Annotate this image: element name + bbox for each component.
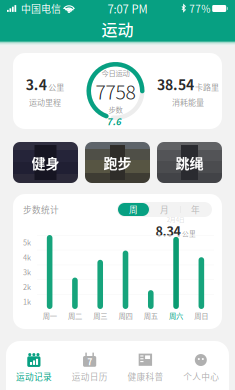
staticText: 跳绳 (175, 152, 203, 173)
button[interactable]: 跳绳 (157, 142, 222, 183)
staticText: 3k (23, 267, 31, 277)
staticText: 周日 (194, 310, 208, 321)
staticText: 8.34 (155, 222, 180, 240)
staticText: 运动记录 (16, 370, 52, 383)
button[interactable]: 7 (62, 345, 118, 389)
staticText: 周二 (68, 310, 82, 321)
staticText: 周四 (118, 310, 132, 321)
staticText: 运动里程 (29, 96, 61, 108)
staticText: 5k (23, 237, 31, 248)
button[interactable]: 周 (118, 203, 149, 216)
staticText: 周一 (43, 310, 57, 321)
staticText: 7.6 (106, 114, 121, 128)
staticText: 4k (23, 252, 31, 262)
staticText: 公里 (182, 229, 196, 238)
staticText: 运动日历 (72, 370, 108, 383)
staticText: 卡路里 (195, 81, 219, 93)
staticText: 2k (23, 281, 31, 292)
staticText: 个人中心 (183, 370, 219, 383)
staticText: 运动 (101, 17, 133, 41)
staticText: 月 (160, 203, 169, 216)
button[interactable]: 健身 (13, 142, 78, 183)
staticText: 周三 (93, 310, 107, 321)
staticText: 周六 (169, 310, 183, 321)
staticText: 38.54 (157, 74, 193, 94)
button[interactable]: 运动记录 (6, 345, 62, 389)
staticText: 周五 (144, 310, 158, 321)
button[interactable]: 健康科普 (117, 345, 173, 389)
staticText: 步数 (108, 104, 122, 115)
staticText: 77% (189, 1, 210, 16)
staticText: 1k (23, 296, 31, 307)
staticText: 2月4日 (167, 215, 185, 224)
button[interactable]: 个人中心 (173, 345, 229, 389)
button[interactable]: 年 (180, 203, 211, 216)
staticText: 公里 (48, 81, 64, 93)
staticText: 7758 (95, 77, 135, 105)
staticText: 3.4 (26, 74, 47, 94)
staticText: 今日运动 (101, 67, 129, 78)
staticText: 跑步 (103, 152, 131, 173)
staticText: 周 (129, 203, 138, 216)
button[interactable]: 月 (149, 203, 180, 216)
staticText: 7 (87, 355, 92, 368)
staticText: 7:07 PM (108, 0, 148, 17)
staticText: 消耗能量 (172, 96, 204, 108)
staticText: 健身 (31, 152, 59, 173)
staticText: 年 (191, 203, 200, 216)
staticText: 健康科普 (127, 370, 163, 383)
button[interactable]: 跑步 (85, 142, 150, 183)
staticText: 步数统计 (23, 203, 59, 216)
staticText: 中国电信 (21, 1, 61, 16)
